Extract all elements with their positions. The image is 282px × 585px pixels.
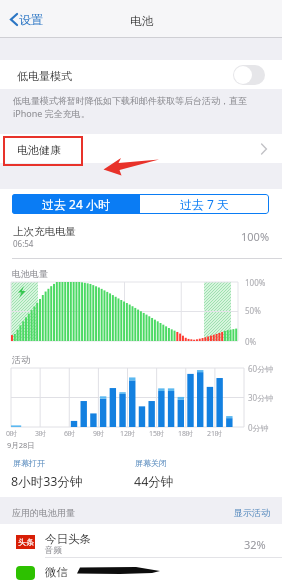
staticText: 头条	[18, 537, 34, 547]
staticText: 3时	[35, 429, 47, 439]
staticText: 上次充电电量	[13, 225, 76, 238]
staticText: 过去 7 天	[180, 196, 230, 212]
staticText: 6时	[64, 429, 76, 439]
staticText: 屏幕打开	[13, 458, 45, 468]
button[interactable]: 低电量模式开关	[233, 65, 265, 85]
staticText: iPhone 完全充电。	[13, 107, 90, 119]
staticText: 电池	[130, 14, 153, 28]
button[interactable]: 电池健康	[0, 134, 282, 163]
staticText: 100%	[245, 277, 266, 288]
staticText: 0%	[245, 336, 257, 347]
staticText: 9时	[93, 429, 105, 439]
staticText: 18时	[178, 429, 194, 439]
staticText: 15时	[149, 429, 165, 439]
staticText: 9月28日	[7, 440, 35, 450]
staticText: 32%	[244, 537, 266, 552]
staticText: 12时	[120, 429, 136, 439]
staticText: 微信	[45, 565, 68, 579]
staticText: 30分钟	[248, 392, 274, 403]
staticText: 44分钟	[134, 473, 174, 490]
staticText: 屏幕关闭	[135, 458, 167, 468]
staticText: 活动	[12, 354, 30, 365]
staticText: 50%	[245, 305, 261, 316]
staticText: 应用的电池用量	[12, 507, 75, 518]
button[interactable]: 过去 24 小时	[12, 194, 140, 214]
staticText: 过去 24 小时	[42, 196, 110, 212]
staticText: 0分钟	[248, 422, 269, 433]
staticText: 音频	[45, 545, 62, 556]
staticText: 低电量模式将暂时降低如下载和邮件获取等后台活动，直至	[13, 95, 247, 106]
staticText: 8小时33分钟	[11, 473, 83, 490]
staticText: 设置	[19, 12, 43, 27]
staticText: 电池电量	[12, 268, 48, 279]
button[interactable]: 头条	[0, 524, 282, 555]
staticText: 21时	[207, 429, 223, 439]
staticText: 60分钟	[248, 363, 274, 374]
staticText: 100%	[241, 229, 270, 244]
staticText: 今日头条	[45, 532, 91, 546]
button[interactable]: 设置	[10, 11, 43, 28]
staticText: 0时	[6, 429, 18, 439]
button[interactable]: 过去 7 天	[140, 194, 269, 214]
staticText: 低电量模式	[17, 69, 72, 83]
staticText: 06:54	[13, 238, 34, 249]
button[interactable]: 微信	[0, 558, 282, 585]
button[interactable]: 显示活动	[234, 507, 270, 518]
staticText: 电池健康	[17, 143, 61, 157]
